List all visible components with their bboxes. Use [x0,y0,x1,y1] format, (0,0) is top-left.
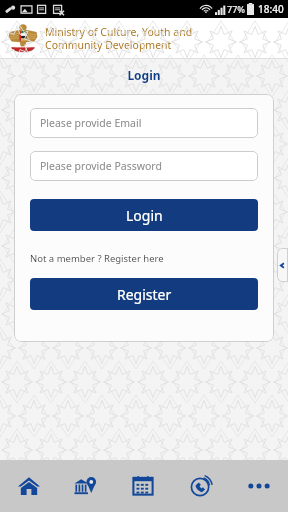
button[interactable]: Login [30,199,258,231]
staticText: Ministry of Culture, Youth and Community… [45,25,193,52]
staticText: 18:40 [258,2,284,16]
staticText: Please provide Email [40,116,142,130]
button[interactable]: Please provide Email [30,108,258,138]
staticText: Please provide Password [40,159,162,173]
button[interactable]: Not a member ? Register here [30,252,164,265]
staticText: Register [117,285,172,304]
button[interactable]: Places [57,460,114,512]
staticText: Login [126,206,163,225]
button[interactable]: Please provide Password [30,151,258,181]
button[interactable]: Open side panel [277,248,288,282]
button[interactable]: Events calendar [114,460,172,512]
button[interactable]: Contact us [172,460,230,512]
button[interactable]: Home [0,460,57,512]
staticText: 77% [227,3,245,15]
staticText: Login [0,67,288,83]
button[interactable]: Register [30,278,258,310]
button[interactable]: More [230,460,288,512]
